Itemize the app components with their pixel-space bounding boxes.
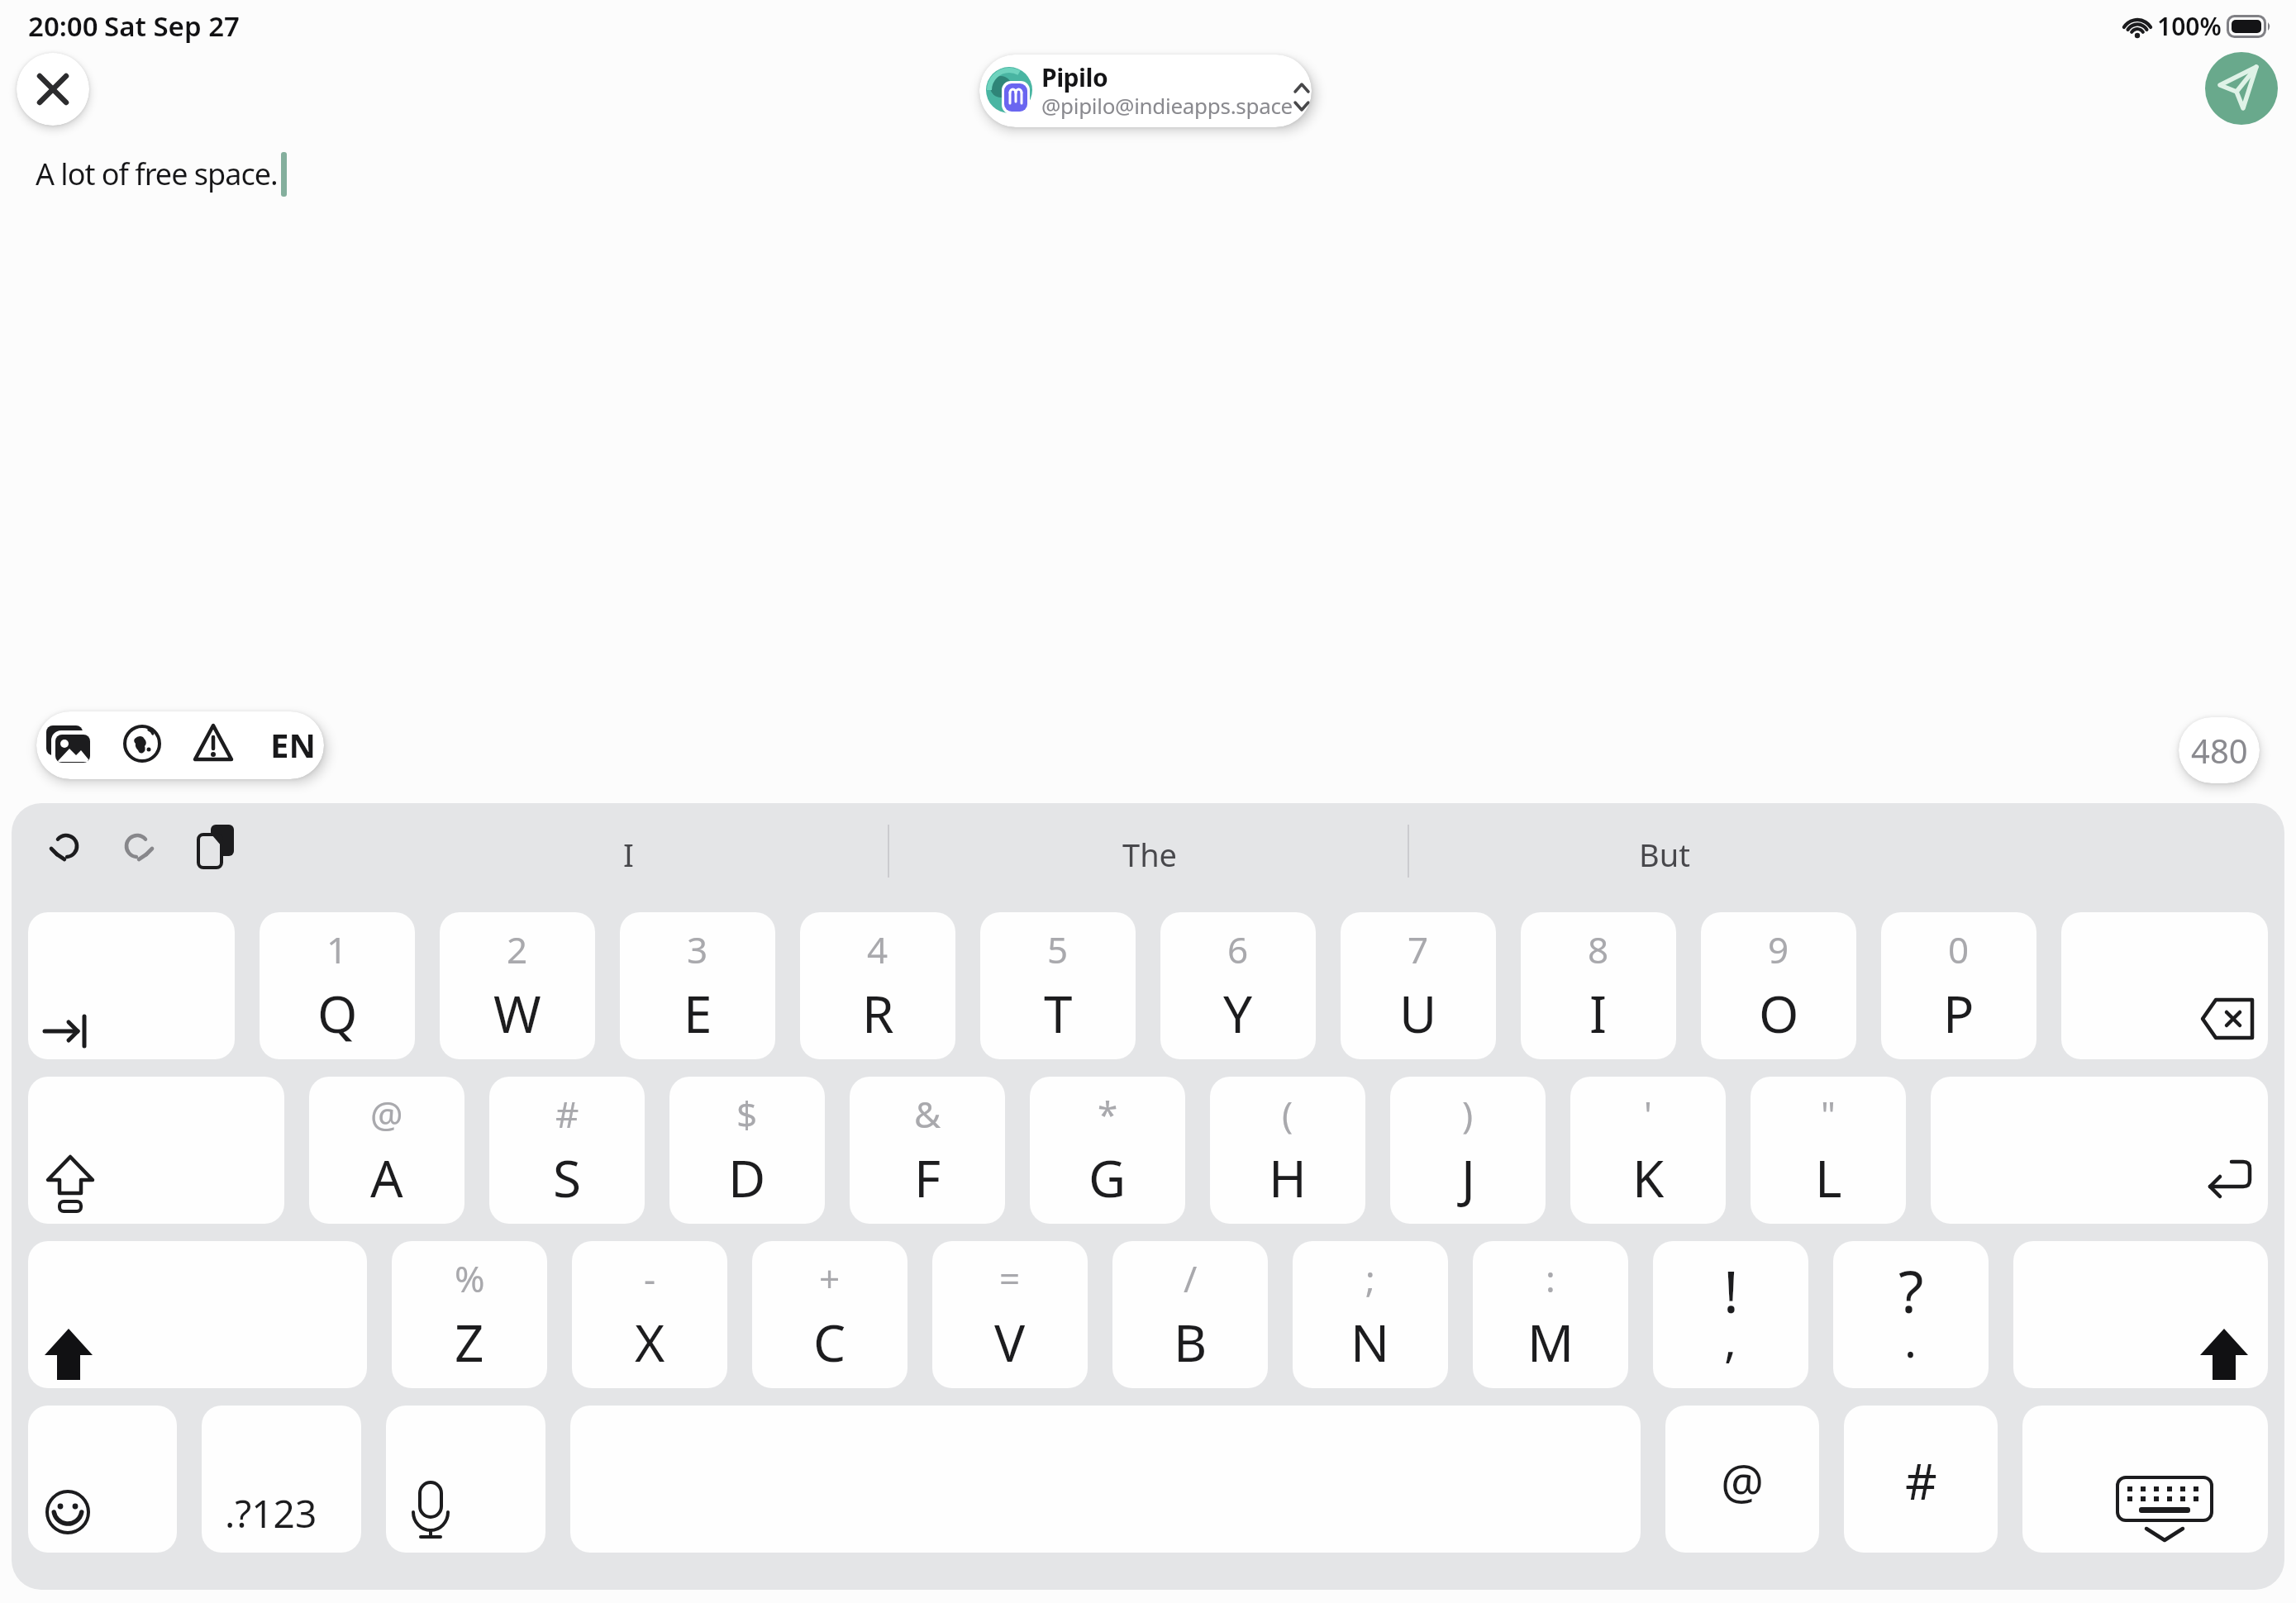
staticText: P: [1943, 978, 1974, 1048]
staticText: O: [1759, 978, 1799, 1048]
staticText: H: [1269, 1143, 1307, 1212]
staticText: A lot of free space.: [36, 154, 278, 194]
staticText: ;: [1365, 1253, 1375, 1303]
staticText: (: [1282, 1089, 1293, 1139]
staticText: 9: [1768, 925, 1789, 974]
button[interactable]: 2: [440, 912, 595, 1059]
button[interactable]: ): [1390, 1077, 1546, 1224]
staticText: M: [1527, 1307, 1574, 1377]
staticText: V: [994, 1307, 1026, 1377]
button[interactable]: [17, 53, 89, 126]
staticText: :: [1546, 1253, 1555, 1303]
button[interactable]: ?: [1833, 1241, 1989, 1388]
staticText: B: [1174, 1307, 1208, 1377]
button[interactable]: [28, 1077, 284, 1224]
button[interactable]: =: [932, 1241, 1088, 1388]
staticText: But: [1639, 833, 1690, 876]
staticText: Q: [317, 978, 358, 1048]
staticText: The: [1122, 833, 1178, 876]
staticText: ": [1821, 1089, 1836, 1139]
button[interactable]: [1931, 1077, 2268, 1224]
button[interactable]: +: [752, 1241, 907, 1388]
staticText: =: [999, 1253, 1021, 1303]
staticText: @: [370, 1089, 403, 1139]
button[interactable]: 4: [800, 912, 955, 1059]
button[interactable]: !: [1653, 1241, 1808, 1388]
button[interactable]: ": [1751, 1077, 1906, 1224]
staticText: #: [1905, 1447, 1937, 1515]
staticText: #: [555, 1089, 579, 1139]
button[interactable]: *: [1030, 1077, 1185, 1224]
staticText: $: [736, 1089, 758, 1139]
button[interactable]: &: [850, 1077, 1005, 1224]
staticText: Sat Sep 27: [104, 7, 240, 45]
button[interactable]: 9: [1701, 912, 1856, 1059]
staticText: Pipilo: [1041, 60, 1108, 94]
button[interactable]: @: [309, 1077, 464, 1224]
staticText: +: [819, 1253, 841, 1303]
staticText: 7: [1408, 925, 1429, 974]
button[interactable]: @: [1665, 1406, 1819, 1553]
staticText: @pipilo@indieapps.space: [1041, 91, 1293, 120]
button[interactable]: #: [1844, 1406, 1998, 1553]
button[interactable]: [2061, 912, 2268, 1059]
button[interactable]: 3: [620, 912, 775, 1059]
button[interactable]: ': [1570, 1077, 1726, 1224]
staticText: 3: [687, 925, 708, 974]
staticText: EN: [270, 722, 316, 767]
button[interactable]: 5: [980, 912, 1136, 1059]
staticText: /: [1184, 1253, 1198, 1303]
button[interactable]: #: [489, 1077, 645, 1224]
button[interactable]: [2205, 52, 2278, 125]
staticText: 8: [1588, 925, 1609, 974]
button[interactable]: :: [1473, 1241, 1628, 1388]
staticText: -: [644, 1253, 656, 1303]
staticText: *: [1098, 1089, 1118, 1139]
button[interactable]: /: [1112, 1241, 1268, 1388]
button[interactable]: 8: [1521, 912, 1676, 1059]
staticText: K: [1632, 1143, 1665, 1212]
button[interactable]: 6: [1160, 912, 1316, 1059]
staticText: ': [1644, 1089, 1652, 1139]
button[interactable]: (: [1210, 1077, 1365, 1224]
staticText: &: [914, 1089, 941, 1139]
staticText: ): [1462, 1089, 1474, 1139]
button[interactable]: [2013, 1241, 2268, 1388]
button[interactable]: -: [572, 1241, 727, 1388]
staticText: .: [1904, 1308, 1917, 1371]
staticText: J: [1461, 1143, 1475, 1212]
button[interactable]: [28, 912, 235, 1059]
staticText: 5: [1047, 925, 1069, 974]
staticText: L: [1815, 1143, 1842, 1212]
button[interactable]: ;: [1293, 1241, 1448, 1388]
staticText: ?: [1898, 1251, 1924, 1329]
button[interactable]: %: [392, 1241, 547, 1388]
staticText: T: [1044, 978, 1073, 1048]
button[interactable]: 7: [1341, 912, 1496, 1059]
button[interactable]: [28, 1406, 177, 1553]
button[interactable]: .?123: [202, 1406, 361, 1553]
staticText: C: [813, 1307, 846, 1377]
staticText: ,: [1724, 1308, 1737, 1371]
staticText: 0: [1948, 925, 1970, 974]
button[interactable]: [28, 1241, 367, 1388]
staticText: .?123: [225, 1487, 317, 1539]
staticText: R: [862, 978, 894, 1048]
button[interactable]: [2022, 1406, 2268, 1553]
staticText: 100%: [2157, 9, 2222, 43]
staticText: 480: [2191, 728, 2248, 773]
staticText: 2: [507, 925, 528, 974]
staticText: G: [1088, 1143, 1127, 1212]
button[interactable]: 0: [1881, 912, 2036, 1059]
button[interactable]: $: [669, 1077, 825, 1224]
staticText: Z: [455, 1307, 484, 1377]
staticText: N: [1350, 1307, 1390, 1377]
staticText: 1: [326, 925, 348, 974]
staticText: %: [455, 1253, 485, 1303]
staticText: 6: [1227, 925, 1249, 974]
button[interactable]: 1: [260, 912, 415, 1059]
button[interactable]: Pipilo: [979, 55, 1312, 127]
button[interactable]: [386, 1406, 545, 1553]
staticText: W: [493, 978, 541, 1048]
